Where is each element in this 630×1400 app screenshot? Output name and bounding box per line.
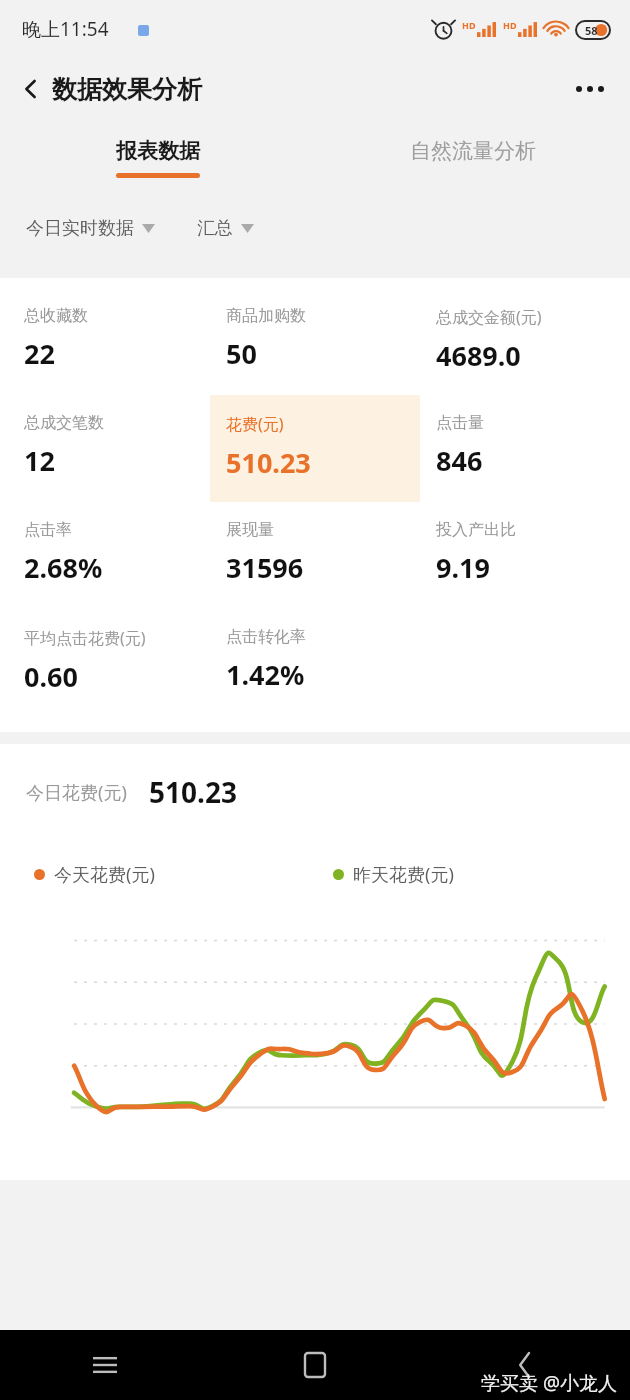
staticText: 花费(元): [226, 413, 284, 435]
staticText: 总收藏数: [24, 306, 88, 326]
staticText: 晚上11:54: [22, 16, 109, 42]
staticText: 点击量: [436, 413, 484, 433]
button[interactable]: Recent apps: [0, 1330, 210, 1400]
staticText: 846: [436, 442, 483, 479]
staticText: 0.60: [24, 658, 78, 695]
staticText: 展现量: [226, 520, 274, 540]
staticText: 自然流量分析: [410, 138, 536, 164]
staticText: 今天花费(元): [54, 862, 155, 887]
staticText: 数据效果分析: [52, 74, 202, 105]
staticText: 4689.0: [436, 337, 521, 374]
button[interactable]: 报表数据: [0, 120, 315, 192]
staticText: 510.23: [149, 773, 237, 811]
button[interactable]: 展现量: [210, 502, 420, 609]
staticText: 2.68%: [24, 549, 103, 586]
staticText: 9.19: [436, 549, 490, 586]
button[interactable]: 点击量: [420, 395, 630, 502]
button[interactable]: 花费(元): [210, 395, 420, 502]
staticText: 投入产出比: [436, 520, 516, 540]
button[interactable]: 点击转化率: [210, 609, 420, 716]
staticText: 今日实时数据: [26, 217, 134, 240]
button[interactable]: 今日实时数据: [26, 211, 155, 246]
staticText: 总成交笔数: [24, 413, 104, 433]
staticText: 12: [24, 442, 55, 479]
button[interactable]: Back: [420, 1330, 630, 1400]
staticText: 总成交金额(元): [436, 306, 542, 328]
staticText: 平均点击花费(元): [24, 627, 146, 649]
staticText: 1.42%: [226, 656, 305, 693]
button[interactable]: 自然流量分析: [315, 120, 630, 192]
button[interactable]: 总成交笔数: [0, 395, 210, 502]
staticText: 50: [226, 335, 257, 372]
other: Back: [14, 72, 48, 106]
staticText: 报表数据: [116, 138, 200, 164]
button[interactable]: 总成交金额(元): [420, 288, 630, 395]
staticText: 31596: [226, 549, 304, 586]
staticText: 点击率: [24, 520, 72, 540]
staticText: 点击转化率: [226, 627, 306, 647]
button[interactable]: More options: [568, 67, 612, 111]
staticText: HD: [503, 19, 517, 31]
staticText: 58: [585, 23, 598, 38]
button[interactable]: 平均点击花费(元): [0, 609, 210, 716]
staticText: 今日花费(元): [26, 780, 127, 805]
staticText: HD: [462, 19, 476, 31]
button[interactable]: 总收藏数: [0, 288, 210, 395]
button[interactable]: 商品加购数: [210, 288, 420, 395]
staticText: 学买卖 @小龙人: [481, 1370, 618, 1396]
button[interactable]: Back: [14, 72, 202, 106]
button[interactable]: Home: [210, 1330, 420, 1400]
button[interactable]: 点击率: [0, 502, 210, 609]
staticText: 510.23: [226, 444, 311, 481]
staticText: 昨天花费(元): [353, 862, 454, 887]
button[interactable]: 投入产出比: [420, 502, 630, 609]
button[interactable]: 汇总: [197, 211, 254, 246]
staticText: 商品加购数: [226, 306, 306, 326]
staticText: 22: [24, 335, 55, 372]
staticText: 汇总: [197, 217, 233, 240]
